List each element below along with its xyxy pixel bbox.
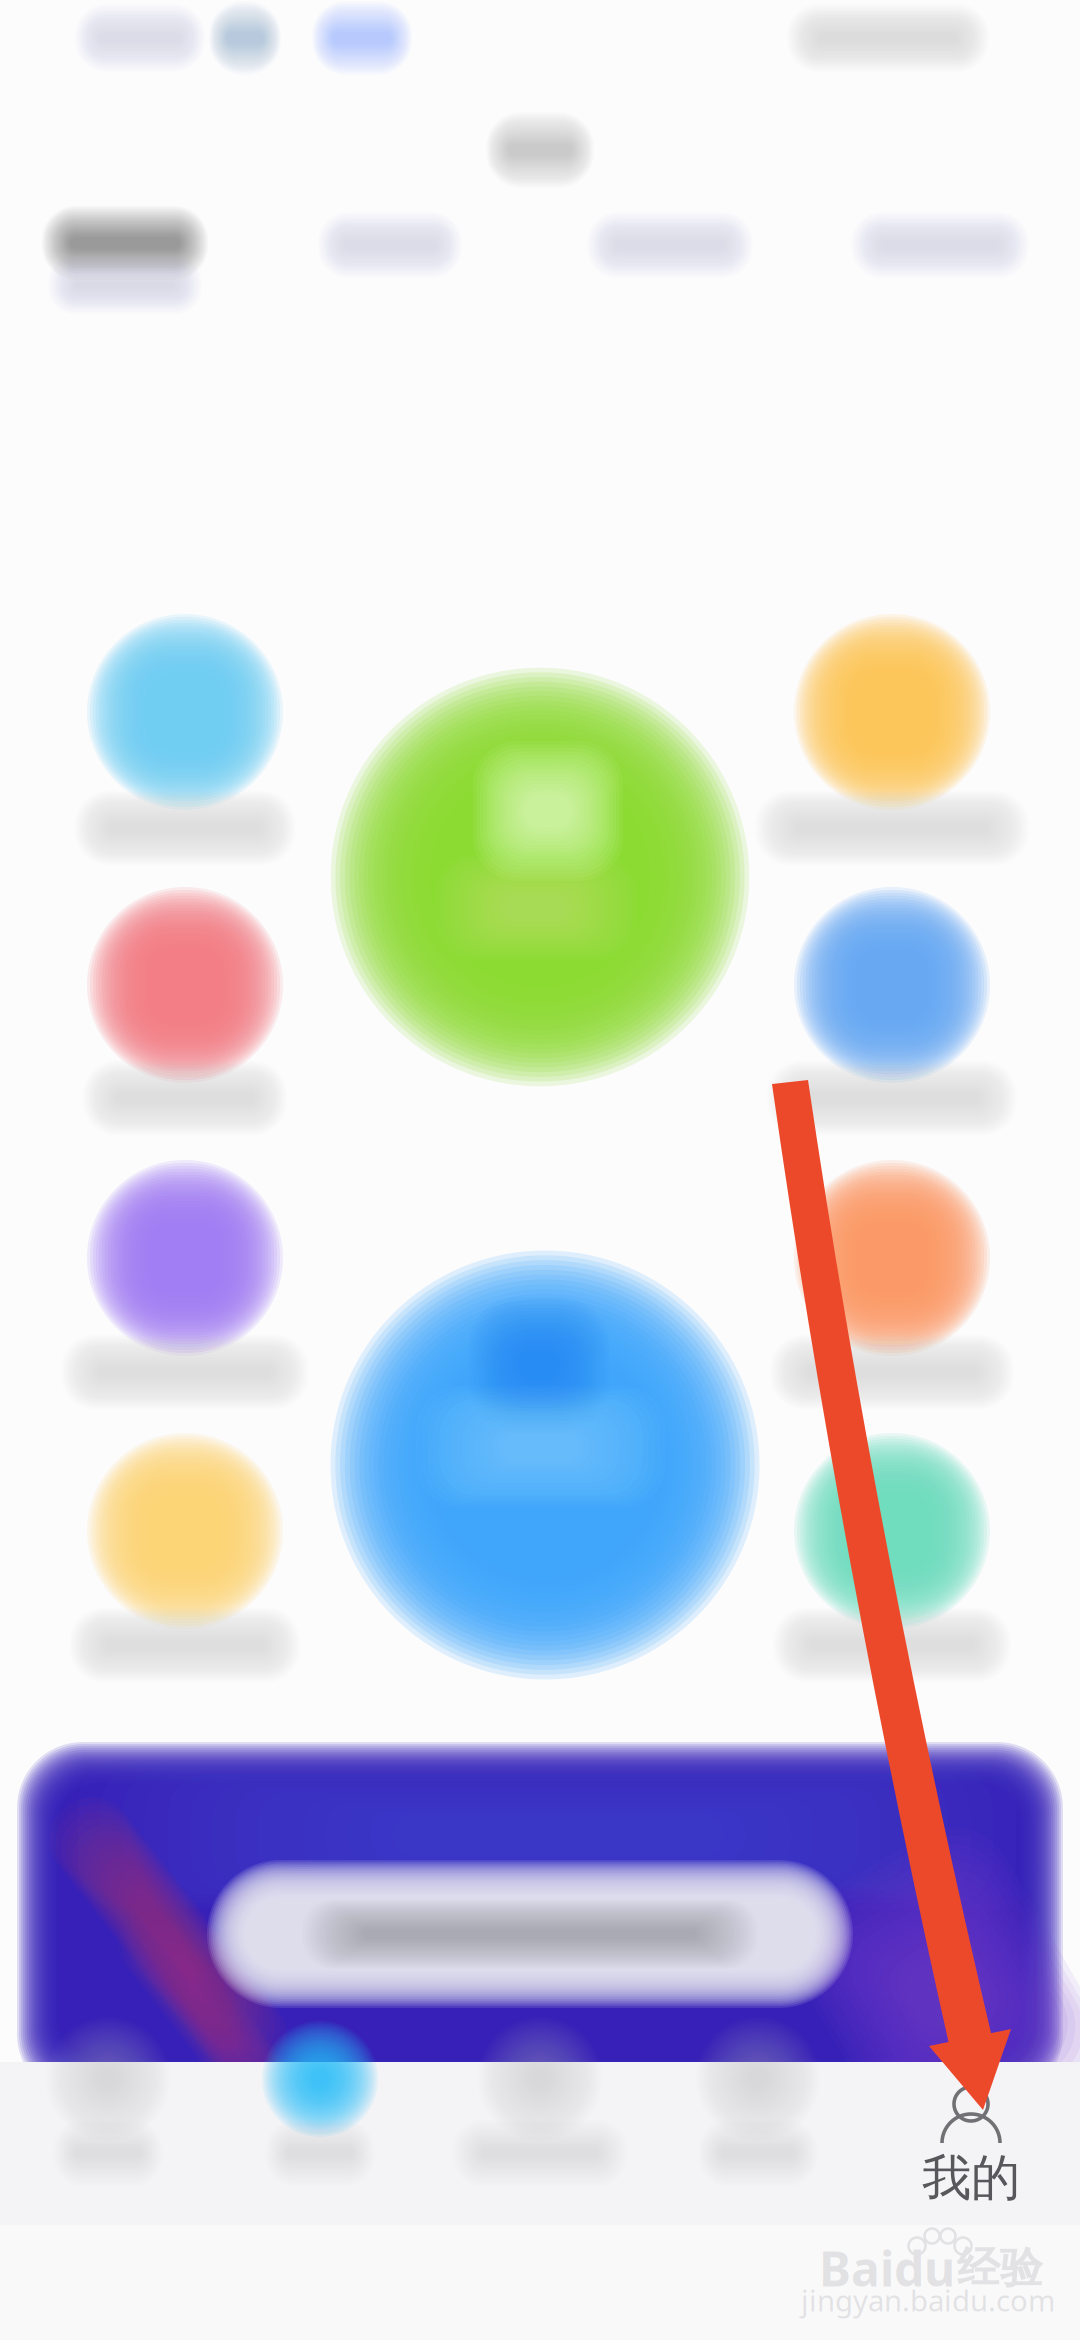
button[interactable]: 标签页 (210, 2017, 430, 2207)
button[interactable]: 应用入口 (794, 614, 990, 810)
button[interactable]: 应用入口 (87, 887, 283, 1083)
button[interactable]: 应用入口 (794, 1433, 990, 1629)
staticText: 经验 (957, 2242, 1043, 2294)
button[interactable]: 应用入口 (87, 1160, 283, 1356)
button[interactable]: 标签页 (430, 2017, 650, 2207)
button[interactable]: 标签页 (648, 2017, 868, 2207)
staticText: Baidu (819, 2236, 955, 2300)
button[interactable]: 应用入口 (794, 887, 990, 1083)
button[interactable]: 应用入口 (87, 1433, 283, 1629)
button[interactable]: 主要功能 (331, 668, 749, 1086)
staticText: jingyan.baidu.com (801, 2280, 1055, 2319)
staticText: 我的 (922, 2148, 1020, 2208)
button[interactable] (15, 183, 235, 333)
button[interactable]: 标签页 (0, 2017, 218, 2207)
button[interactable] (830, 185, 1050, 335)
button[interactable]: 应用入口 (794, 1160, 990, 1356)
button[interactable]: 次要功能 (330, 1250, 759, 1679)
button[interactable] (0, 1731, 1080, 2111)
button[interactable] (280, 185, 500, 335)
button[interactable]: 应用入口 (87, 614, 283, 810)
button[interactable] (560, 185, 780, 335)
button[interactable]: 我的 (861, 2036, 1080, 2226)
